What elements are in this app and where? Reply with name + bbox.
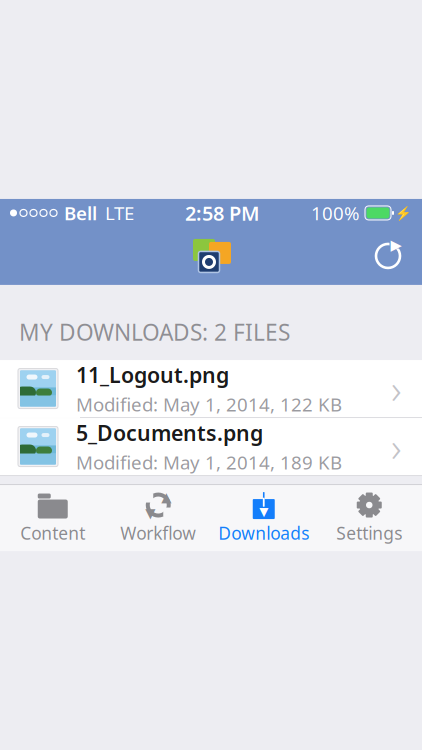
button[interactable]: Content [0,485,105,551]
staticText: 100% [311,201,360,225]
staticText: ▼ [145,505,155,521]
staticText: 2:58 PM [185,200,260,226]
staticText: ▶ [390,237,401,253]
staticText: MY DOWNLOADS: 2 FILES [19,317,290,347]
staticText: Content [20,521,85,544]
staticText: Workflow [120,521,196,544]
staticText: ⚡ [395,205,412,220]
staticText: Modified: May 1, 2014, 189 KB [76,450,342,475]
staticText: ▲ [161,489,171,505]
staticText: Downloads [218,521,309,544]
staticText: LTE [105,201,134,225]
button[interactable]: ▲ [105,485,211,551]
staticText: Settings [336,521,402,544]
staticText: › [391,362,402,415]
button[interactable]: ▼ [211,485,316,551]
staticText: ▼ [259,505,268,518]
button[interactable]: Refresh [372,240,422,272]
staticText: 11_Logout.png [76,360,229,389]
button[interactable]: 11_Logout.png [0,360,422,417]
staticText: Modified: May 1, 2014, 122 KB [76,392,342,417]
button[interactable]: 5_Documents.png [0,418,422,475]
button[interactable]: Settings [316,485,422,551]
staticText: 5_Documents.png [76,418,263,447]
staticText: › [391,420,402,473]
staticText: Bell [64,201,97,225]
